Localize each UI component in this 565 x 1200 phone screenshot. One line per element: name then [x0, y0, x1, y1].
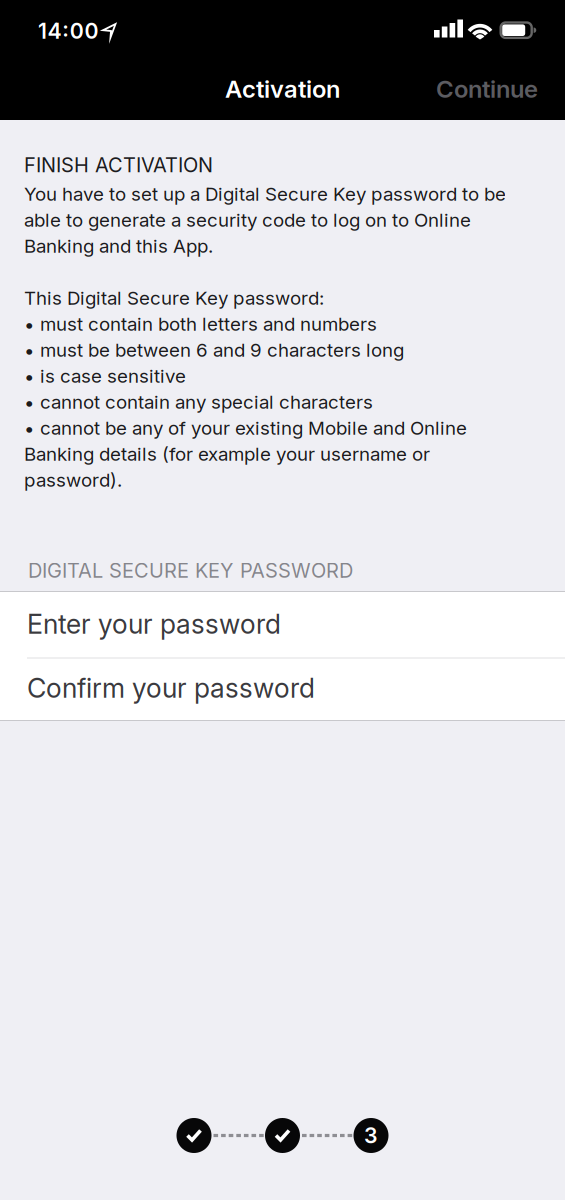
button[interactable]: Confirm your password	[0, 656, 565, 720]
staticText: Continue	[436, 75, 538, 103]
staticText: You have to set up a Digital Secure Key …	[24, 183, 506, 205]
staticText: This Digital Secure Key password:	[24, 287, 324, 309]
staticText: Banking details (for example your userna…	[24, 443, 430, 465]
staticText: DIGITAL SECURE KEY PASSWORD	[28, 559, 353, 582]
staticText: password).	[24, 469, 122, 491]
staticText: • must be between 6 and 9 characters lon…	[24, 339, 404, 361]
staticText: Confirm your password	[27, 672, 315, 704]
staticText: • cannot be any of your existing Mobile …	[24, 417, 467, 439]
staticText: able to generate a security code to log …	[24, 209, 471, 231]
staticText: • is case sensitive	[24, 365, 186, 387]
button[interactable]: Enter your password	[0, 592, 565, 656]
staticText: 14:00	[38, 18, 98, 44]
staticText: Activation	[225, 75, 340, 103]
staticText: Banking and this App.	[24, 235, 213, 257]
staticText: • cannot contain any special characters	[24, 391, 373, 413]
staticText: • must contain both letters and numbers	[24, 313, 377, 335]
staticText: 3	[364, 1123, 378, 1148]
staticText: FINISH ACTIVATION	[24, 153, 213, 177]
staticText: Enter your password	[27, 608, 281, 640]
button[interactable]: Continue	[426, 67, 538, 111]
